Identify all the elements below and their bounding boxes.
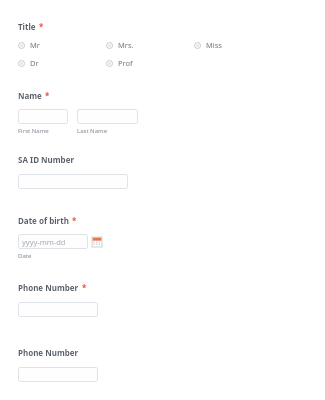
- button[interactable]: Dr: [18, 58, 39, 68]
- staticText: *: [82, 282, 87, 293]
- staticText: yyyy-mm-dd: [22, 237, 66, 247]
- staticText: Mrs.: [118, 40, 134, 50]
- staticText: *: [39, 21, 44, 32]
- button[interactable]: [18, 302, 98, 317]
- staticText: Mr: [30, 40, 40, 50]
- staticText: Name: [18, 90, 42, 101]
- staticText: *: [45, 90, 50, 101]
- staticText: First Name: [18, 127, 49, 135]
- button[interactable]: Mrs.: [106, 40, 134, 50]
- button[interactable]: [18, 367, 98, 382]
- button[interactable]: [77, 109, 138, 124]
- staticText: Prof: [118, 58, 133, 68]
- staticText: Miss: [206, 40, 222, 50]
- staticText: Dr: [30, 58, 39, 68]
- button[interactable]: Pick date: [92, 237, 102, 247]
- staticText: Date: [18, 252, 32, 260]
- staticText: Title: [18, 21, 36, 32]
- staticText: Date of birth: [18, 215, 69, 226]
- button[interactable]: Prof: [106, 58, 133, 68]
- button[interactable]: Mr: [18, 40, 40, 50]
- button[interactable]: yyyy-mm-dd: [18, 234, 88, 249]
- staticText: SA ID Number: [18, 154, 74, 165]
- staticText: *: [72, 215, 77, 226]
- button[interactable]: Miss: [194, 40, 222, 50]
- staticText: Last Name: [77, 127, 108, 135]
- button[interactable]: [18, 174, 128, 189]
- staticText: Phone Number: [18, 347, 79, 358]
- button[interactable]: [18, 109, 68, 124]
- staticText: Phone Number: [18, 282, 79, 293]
